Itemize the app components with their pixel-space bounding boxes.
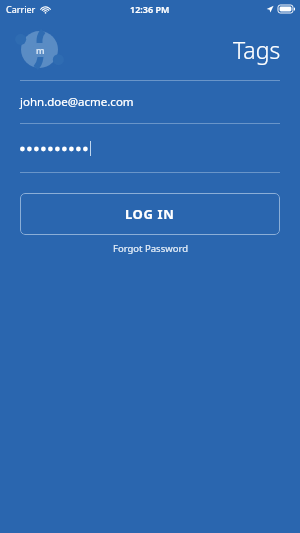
button[interactable]: LOG IN <box>20 193 280 235</box>
staticText: Tags <box>233 34 281 65</box>
button[interactable]: Forgot Password <box>0 242 300 255</box>
other: App logo <box>21 31 58 68</box>
staticText: john.doe@acme.com <box>20 94 134 110</box>
staticText: m <box>36 44 45 56</box>
staticText: Carrier <box>6 3 36 15</box>
staticText: 12:36 PM <box>130 3 170 15</box>
staticText: Forgot Password <box>113 242 188 255</box>
button[interactable] <box>0 124 300 172</box>
button[interactable]: john.doe@acme.com <box>0 81 300 123</box>
staticText: LOG IN <box>125 205 175 223</box>
